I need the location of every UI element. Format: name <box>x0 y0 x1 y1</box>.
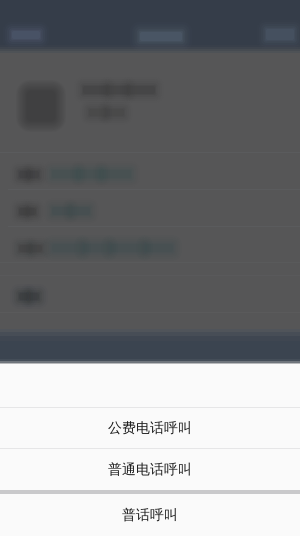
staticText: 公费电话呼叫 <box>108 419 192 437</box>
button[interactable]: 普话呼叫 <box>0 494 300 536</box>
button[interactable]: 公费电话呼叫 <box>0 408 300 448</box>
staticText: 普通电话呼叫 <box>108 461 192 478</box>
staticText: 普话呼叫 <box>122 506 178 524</box>
button[interactable]: 普通电话呼叫 <box>0 449 300 490</box>
